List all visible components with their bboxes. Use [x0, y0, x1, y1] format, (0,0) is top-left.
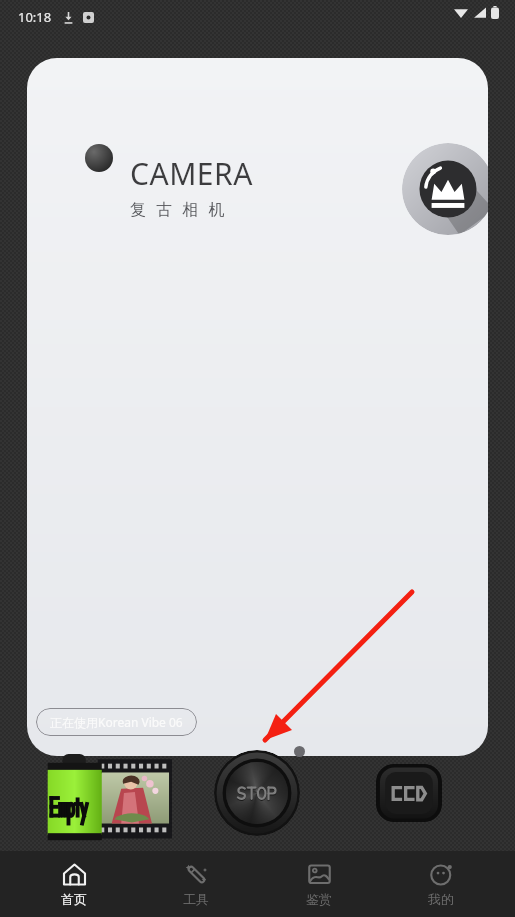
button[interactable]: CCD mode	[376, 764, 442, 822]
staticText: 复 古 相 机	[130, 198, 228, 220]
staticText: 正在使用Korean Vibe 06	[50, 714, 183, 730]
staticText: 首页	[61, 891, 87, 907]
staticText: 我的	[428, 891, 454, 907]
button[interactable]: 我的	[392, 853, 490, 915]
staticText: 工具	[183, 891, 209, 907]
staticText: 10:18	[18, 8, 52, 26]
button[interactable]: 首页	[25, 853, 123, 915]
button[interactable]: VIP	[402, 143, 488, 235]
button[interactable]: 工具	[147, 853, 245, 915]
staticText: 鉴赏	[306, 891, 332, 907]
button[interactable]: Film roll	[44, 754, 172, 842]
button[interactable]: Stop	[214, 750, 300, 836]
staticText: CAMERA	[130, 153, 253, 194]
button[interactable]: 正在使用Korean Vibe 06	[36, 708, 197, 736]
button[interactable]: 鉴赏	[270, 853, 368, 915]
